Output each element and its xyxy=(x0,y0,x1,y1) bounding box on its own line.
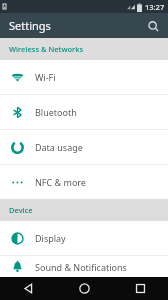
staticText: Device xyxy=(9,205,33,215)
button[interactable]: Sound & Notifications xyxy=(0,256,168,277)
staticText: NFC & more xyxy=(35,176,86,188)
staticText: Wi-Fi xyxy=(35,71,56,83)
button[interactable]: Back xyxy=(0,277,56,300)
button[interactable]: Home xyxy=(56,277,112,300)
staticText: 13:27 xyxy=(145,2,165,12)
button[interactable]: Data usage xyxy=(0,130,168,164)
staticText: Sound & Notifications xyxy=(35,261,127,273)
staticText: Wireless & Networks xyxy=(9,44,84,54)
button[interactable]: Bluetooth xyxy=(0,95,168,129)
button[interactable]: NFC & more xyxy=(0,165,168,199)
staticText: Bluetooth xyxy=(35,106,77,118)
button[interactable]: Wi-Fi xyxy=(0,60,168,94)
button[interactable]: Search xyxy=(143,16,163,36)
staticText: Settings xyxy=(9,18,51,33)
staticText: Data usage xyxy=(35,141,83,153)
staticText: Display xyxy=(35,232,66,244)
button[interactable]: Recent apps xyxy=(112,277,168,300)
button[interactable]: Display xyxy=(0,221,168,255)
